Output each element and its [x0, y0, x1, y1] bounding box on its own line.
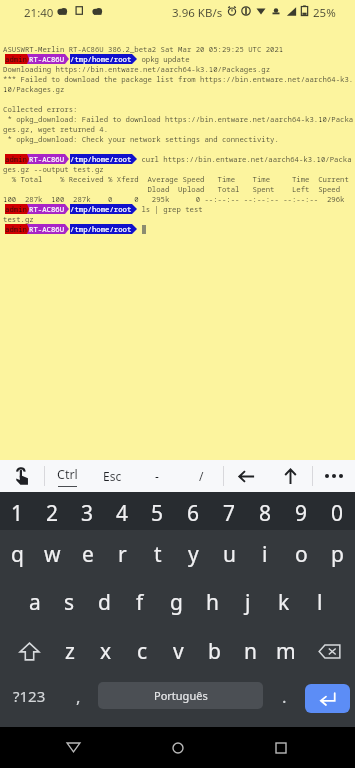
button[interactable]: Back	[42, 727, 104, 768]
button[interactable]: 8	[247, 496, 283, 530]
button[interactable]: Ctrl	[45, 460, 90, 492]
staticText: 4	[116, 499, 129, 528]
button[interactable]: 3	[70, 496, 105, 530]
button[interactable]: p	[319, 530, 355, 578]
button[interactable]: Esc	[90, 460, 135, 492]
staticText: h	[206, 588, 219, 617]
button[interactable]: b	[196, 627, 232, 675]
staticText: i	[262, 540, 268, 569]
staticText: z	[65, 637, 75, 666]
button[interactable]: o	[283, 530, 319, 578]
button[interactable]: m	[268, 627, 304, 675]
staticText: /tmp/home/root	[70, 54, 132, 64]
button[interactable]: l	[302, 578, 338, 627]
button[interactable]: u	[211, 530, 247, 578]
button[interactable]: t	[140, 530, 175, 578]
button[interactable]: 5	[140, 496, 175, 530]
button[interactable]: j	[230, 578, 266, 627]
staticText: /	[199, 468, 204, 484]
staticText: n	[244, 637, 257, 666]
staticText: /tmp/home/root	[70, 154, 132, 164]
button[interactable]: e	[70, 530, 105, 578]
staticText: l	[317, 588, 323, 617]
staticText: Dload Upload Total Spent Left Speed	[3, 184, 341, 194]
staticText: ges.gz --output test.gz	[3, 164, 104, 174]
button[interactable]: /	[179, 460, 223, 492]
staticText: 9	[295, 499, 308, 528]
staticText: admin	[5, 224, 27, 234]
button[interactable]: s	[52, 578, 87, 627]
staticText: 5	[151, 499, 164, 528]
staticText: RT-AC86U	[29, 154, 65, 164]
button[interactable]: Backspace	[304, 627, 355, 675]
button[interactable]: 9	[283, 496, 319, 530]
button[interactable]: -	[135, 460, 179, 492]
button[interactable]: ,	[58, 675, 98, 727]
button[interactable]: ?123	[0, 675, 58, 727]
button[interactable]: Português	[98, 682, 263, 709]
button[interactable]: Enter	[305, 684, 350, 713]
staticText: j	[245, 588, 251, 617]
staticText: .	[282, 685, 287, 708]
staticText: 21:40	[24, 5, 54, 21]
staticText: 3	[81, 499, 94, 528]
button[interactable]: y	[175, 530, 211, 578]
staticText: RT-AC86U	[29, 204, 65, 214]
staticText: % Total % Received % Xferd Average Speed…	[3, 174, 349, 184]
staticText: t	[154, 540, 162, 569]
button[interactable]: a	[17, 578, 52, 627]
button[interactable]: w	[35, 530, 70, 578]
button[interactable]: k	[266, 578, 302, 627]
button[interactable]: More options	[313, 460, 355, 492]
staticText: a	[29, 588, 41, 617]
staticText: 100 287k 100 287k 0 0 295k 0 --:--:-- --…	[3, 194, 345, 204]
button[interactable]: 7	[211, 496, 247, 530]
staticText: test.gz	[3, 214, 34, 224]
button[interactable]: Recents	[250, 727, 312, 768]
staticText: ASUSWRT-Merlin RT-AC86U 386.2_beta2 Sat …	[3, 44, 284, 54]
button[interactable]: r	[105, 530, 140, 578]
button[interactable]: h	[194, 578, 230, 627]
staticText: opkg update	[137, 54, 190, 64]
staticText: 8	[259, 499, 272, 528]
staticText: -	[155, 468, 159, 484]
staticText: 1	[11, 499, 24, 528]
button[interactable]: 1	[0, 496, 35, 530]
button[interactable]: n	[232, 627, 268, 675]
staticText: s	[64, 588, 75, 617]
staticText: m	[276, 637, 296, 666]
staticText: 3.96 KB/s	[172, 5, 223, 21]
button[interactable]: q	[0, 530, 35, 578]
button[interactable]: Shift	[3, 627, 55, 675]
button[interactable]: d	[87, 578, 122, 627]
staticText: y	[188, 540, 199, 569]
button[interactable]: f	[122, 578, 158, 627]
staticText: v	[173, 637, 184, 666]
staticText: o	[295, 540, 308, 569]
staticText: e	[82, 540, 94, 569]
staticText: q	[11, 540, 24, 569]
staticText: admin	[5, 154, 27, 164]
button[interactable]: .	[263, 675, 305, 727]
button[interactable]: x	[88, 627, 124, 675]
button[interactable]: Arrow up	[268, 460, 312, 492]
staticText: admin	[5, 204, 27, 214]
staticText: admin	[5, 54, 27, 64]
button[interactable]: i	[247, 530, 283, 578]
button[interactable]: v	[160, 627, 196, 675]
staticText: curl https://bin.entware.net/aarch64-k3.…	[137, 154, 352, 164]
button[interactable]: z	[52, 627, 88, 675]
button[interactable]: 4	[105, 496, 140, 530]
staticText: p	[331, 540, 344, 569]
button[interactable]: Home	[147, 727, 209, 768]
button[interactable]: 2	[35, 496, 70, 530]
button[interactable]: c	[124, 627, 160, 675]
staticText: RT-AC86U	[29, 224, 65, 234]
button[interactable]: 0	[319, 496, 355, 530]
button[interactable]: Touchpad mode	[0, 460, 44, 492]
staticText: ,	[76, 685, 81, 708]
button[interactable]: Arrow left	[224, 460, 268, 492]
button[interactable]: 6	[175, 496, 211, 530]
button[interactable]: g	[158, 578, 194, 627]
staticText: Esc	[103, 468, 122, 484]
